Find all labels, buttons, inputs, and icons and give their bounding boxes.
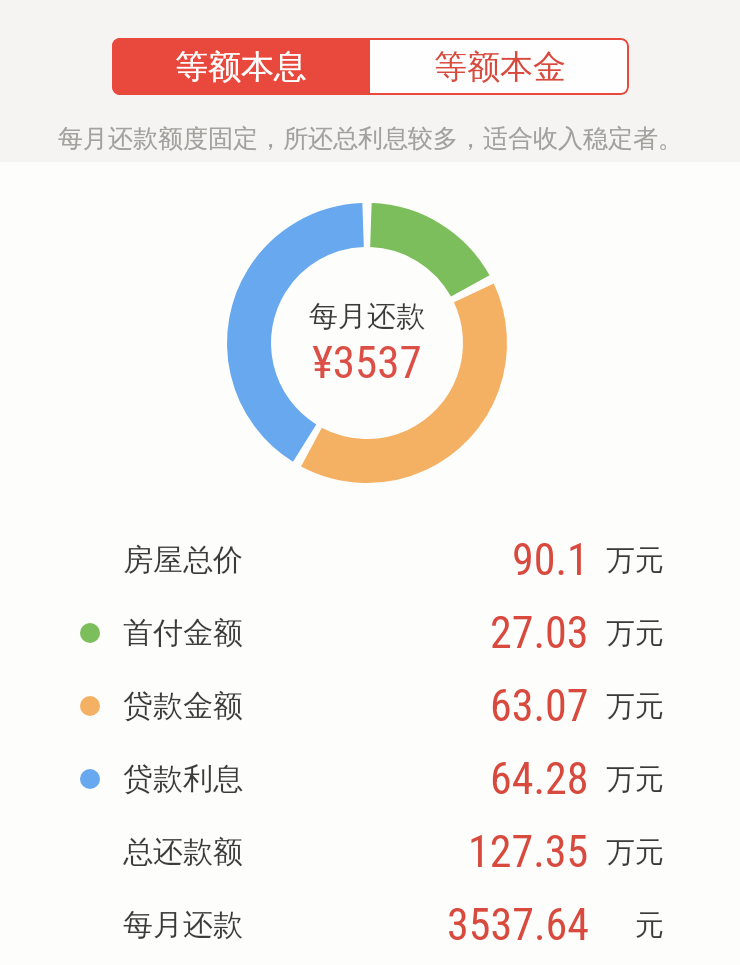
button[interactable]: 等额本金 [370, 38, 629, 95]
staticText: 贷款金额 [123, 687, 243, 725]
staticText: 等额本息 [175, 46, 307, 88]
staticText: 63.07 [490, 680, 589, 732]
staticText: 127.35 [468, 826, 589, 878]
staticText: 64.28 [490, 753, 589, 805]
staticText: 每月还款 [309, 298, 425, 335]
staticText: 万元 [606, 761, 664, 798]
button[interactable]: 贷款金额 [0, 674, 740, 738]
button[interactable]: 贷款利息 [0, 747, 740, 811]
staticText: 万元 [606, 542, 664, 579]
staticText: 元 [635, 907, 664, 944]
staticText: ¥3537 [312, 336, 422, 389]
staticText: 万元 [606, 834, 664, 871]
staticText: 房屋总价 [123, 541, 243, 579]
staticText: 90.1 [512, 534, 589, 586]
button[interactable]: 房屋总价 [0, 528, 740, 592]
staticText: 贷款利息 [123, 760, 243, 798]
button[interactable]: 每月还款 [0, 893, 740, 957]
button[interactable]: 总还款额 [0, 820, 740, 884]
staticText: 每月还款额度固定，所还总利息较多，适合收入稳定者。 [58, 123, 683, 154]
staticText: 万元 [606, 615, 664, 652]
staticText: 总还款额 [123, 833, 243, 871]
staticText: 27.03 [490, 607, 589, 659]
staticText: 万元 [606, 688, 664, 725]
staticText: 首付金额 [123, 614, 243, 652]
staticText: 等额本金 [434, 46, 566, 88]
button[interactable]: 首付金额 [0, 601, 740, 665]
staticText: 每月还款 [123, 906, 243, 944]
button[interactable]: 等额本息 [112, 38, 370, 95]
staticText: 3537.64 [447, 899, 589, 951]
